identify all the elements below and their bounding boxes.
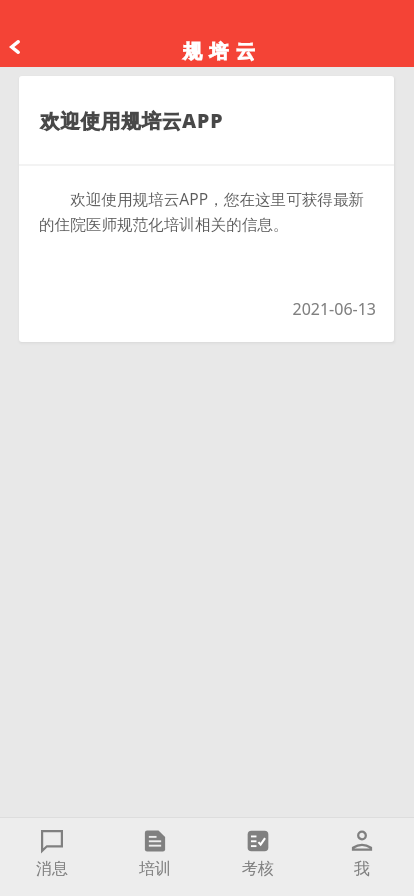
staticText: 2021-06-13 xyxy=(19,298,376,320)
button[interactable]: Back xyxy=(0,22,29,67)
button[interactable]: 考核 xyxy=(206,818,310,879)
button[interactable]: 消息 xyxy=(0,818,103,879)
staticText: 规培云 xyxy=(183,40,263,64)
staticText: 欢迎使用规培云APP xyxy=(40,107,224,134)
button[interactable]: 培训 xyxy=(103,818,206,879)
staticText: 消息 xyxy=(36,859,68,879)
button[interactable]: 我 xyxy=(310,818,414,879)
staticText: 欢迎使用规培云APP，您在这里可获得最新的住院医师规范化培训相关的信息。 xyxy=(39,188,365,234)
staticText: 我 xyxy=(354,859,370,879)
staticText: 培训 xyxy=(139,859,171,879)
staticText: 考核 xyxy=(242,859,274,879)
